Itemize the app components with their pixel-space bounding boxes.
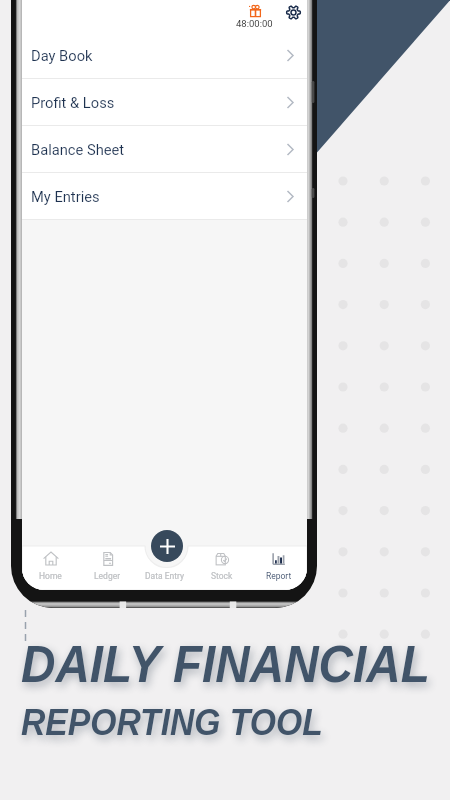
- staticText: Profit & Loss: [31, 94, 115, 111]
- button[interactable]: Balance Sheet: [22, 126, 307, 173]
- staticText: Data Entry: [145, 571, 184, 581]
- button[interactable]: Stock: [193, 546, 250, 590]
- button[interactable]: Ledger: [79, 546, 136, 590]
- staticText: Home: [39, 571, 62, 581]
- button[interactable]: Gift offer: [233, 4, 275, 29]
- staticText: DAILY FINANCIAL: [21, 636, 430, 693]
- staticText: 48:00:00: [236, 18, 273, 29]
- button[interactable]: Settings: [282, 1, 305, 24]
- staticText: Stock: [211, 571, 233, 581]
- staticText: Balance Sheet: [31, 141, 125, 158]
- button[interactable]: Data Entry: [136, 546, 193, 590]
- button[interactable]: Home: [22, 546, 79, 590]
- button[interactable]: Report: [250, 546, 307, 590]
- button[interactable]: Profit & Loss: [22, 79, 307, 126]
- staticText: Ledger: [94, 571, 121, 581]
- button[interactable]: My Entries: [22, 173, 307, 220]
- staticText: My Entries: [31, 188, 100, 205]
- staticText: REPORTING TOOL: [21, 702, 323, 742]
- staticText: Day Book: [31, 47, 93, 64]
- button[interactable]: Day Book: [22, 32, 307, 79]
- button[interactable]: Add entry: [151, 530, 183, 562]
- staticText: Report: [266, 571, 292, 581]
